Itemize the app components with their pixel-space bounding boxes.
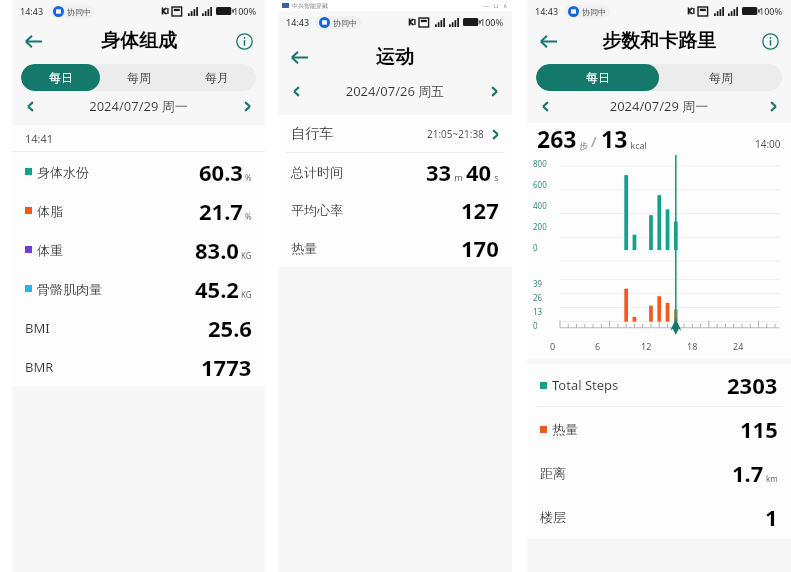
button[interactable]: Next bbox=[232, 91, 262, 121]
staticText: 距离 bbox=[540, 465, 566, 481]
button[interactable]: Next bbox=[479, 76, 509, 106]
staticText: 13 bbox=[533, 306, 543, 317]
staticText: 100% bbox=[480, 16, 504, 28]
staticText: 25.6 bbox=[208, 313, 252, 343]
button[interactable]: Next bbox=[758, 91, 788, 121]
button[interactable]: 热量 bbox=[278, 229, 512, 267]
button[interactable]: Previous bbox=[530, 91, 560, 121]
staticText: % bbox=[245, 172, 252, 183]
button[interactable]: BMR bbox=[12, 347, 265, 386]
staticText: 127 bbox=[461, 195, 499, 225]
button[interactable]: 身体水份 bbox=[12, 152, 265, 191]
staticText: 2024/07/26 周五 bbox=[311, 82, 479, 100]
staticText: — ⊔ ∧ bbox=[483, 2, 508, 10]
staticText: 40 bbox=[466, 157, 492, 187]
button[interactable]: Back bbox=[282, 40, 316, 74]
button[interactable]: BMI bbox=[12, 308, 265, 347]
staticText: 18 bbox=[687, 340, 698, 352]
staticText: 2024/07/29 周一 bbox=[560, 97, 758, 115]
staticText: 12 bbox=[641, 340, 652, 352]
button[interactable]: 楼层 bbox=[527, 495, 791, 539]
staticText: 263 bbox=[537, 123, 577, 151]
staticText: 1 bbox=[765, 502, 778, 532]
button[interactable]: 总计时间 bbox=[278, 153, 512, 191]
button[interactable]: Back bbox=[16, 24, 50, 58]
staticText: 体重 bbox=[37, 242, 63, 258]
button[interactable]: Next bbox=[484, 123, 506, 145]
button[interactable]: Info bbox=[229, 26, 259, 56]
staticText: 体脂 bbox=[37, 203, 63, 219]
staticText: 每周 bbox=[709, 70, 733, 85]
staticText: 每日 bbox=[586, 70, 610, 85]
staticText: 平均心率 bbox=[291, 202, 343, 218]
staticText: 26 bbox=[533, 292, 543, 303]
staticText: 100% bbox=[759, 5, 783, 17]
staticText: km bbox=[766, 473, 778, 484]
staticText: 2024/07/29 周一 bbox=[45, 97, 232, 115]
staticText: 步数和卡路里 bbox=[602, 29, 716, 53]
button[interactable]: 每周 bbox=[659, 64, 782, 91]
button[interactable]: 平均心率 bbox=[278, 191, 512, 229]
staticText: 骨骼肌肉量 bbox=[37, 281, 102, 297]
button[interactable]: 热量 bbox=[527, 407, 791, 451]
button[interactable]: Back bbox=[531, 24, 565, 58]
staticText: 1.7 bbox=[732, 458, 764, 488]
staticText: % bbox=[245, 211, 252, 222]
staticText: 2303 bbox=[727, 370, 778, 400]
staticText: 0 bbox=[533, 242, 538, 253]
staticText: 115 bbox=[740, 414, 778, 444]
staticText: 100% bbox=[233, 5, 257, 17]
button[interactable]: 自行车 bbox=[278, 115, 512, 152]
button[interactable]: Total Steps bbox=[527, 364, 791, 406]
button[interactable]: 体脂 bbox=[12, 191, 265, 230]
staticText: 400 bbox=[533, 200, 547, 211]
button[interactable]: 每日 bbox=[536, 64, 659, 91]
staticText: 83.0 bbox=[195, 235, 239, 265]
staticText: 1773 bbox=[201, 352, 252, 382]
staticText: 13 bbox=[601, 123, 628, 151]
button[interactable]: Previous bbox=[15, 91, 45, 121]
staticText: 协同中 bbox=[333, 18, 357, 28]
staticText: KG bbox=[241, 250, 252, 261]
staticText: 800 bbox=[533, 158, 547, 169]
button[interactable]: 每日 bbox=[21, 64, 100, 91]
staticText: 每月 bbox=[205, 70, 229, 85]
staticText: s bbox=[492, 171, 499, 183]
staticText: 14:43 bbox=[535, 5, 559, 17]
button[interactable]: 骨骼肌肉量 bbox=[12, 269, 265, 308]
staticText: 14:00 bbox=[755, 137, 781, 151]
button[interactable]: 距离 bbox=[527, 451, 791, 495]
staticText: KG bbox=[241, 289, 252, 300]
staticText: 600 bbox=[533, 179, 547, 190]
button[interactable]: Info bbox=[755, 26, 785, 56]
staticText: 14:43 bbox=[286, 16, 310, 28]
staticText: 每日 bbox=[49, 70, 73, 85]
button[interactable]: 每周 bbox=[100, 64, 178, 91]
staticText: 自行车 bbox=[291, 125, 333, 143]
staticText: 200 bbox=[533, 221, 547, 232]
button[interactable]: Previous bbox=[281, 76, 311, 106]
staticText: 170 bbox=[461, 233, 499, 263]
staticText: 步 bbox=[577, 139, 591, 151]
staticText: 0 bbox=[533, 320, 538, 331]
staticText: / bbox=[591, 131, 597, 151]
staticText: 24 bbox=[733, 340, 744, 352]
staticText: 14:41 bbox=[25, 131, 54, 146]
staticText: BMR bbox=[25, 358, 54, 376]
staticText: 运动 bbox=[376, 45, 414, 69]
staticText: 21.7 bbox=[199, 196, 243, 226]
button[interactable]: 体重 bbox=[12, 230, 265, 269]
staticText: 楼层 bbox=[540, 509, 566, 525]
staticText: 热量 bbox=[291, 240, 317, 256]
staticText: 总计时间 bbox=[291, 164, 343, 180]
staticText: 身体水份 bbox=[37, 164, 89, 180]
staticText: 60.3 bbox=[199, 157, 243, 187]
staticText: 21:05~21:38 bbox=[427, 127, 484, 141]
staticText: kcal bbox=[628, 139, 647, 151]
staticText: 45.2 bbox=[195, 274, 239, 304]
staticText: 14:43 bbox=[20, 5, 44, 17]
staticText: 6 bbox=[595, 340, 601, 352]
staticText: BMI bbox=[25, 319, 50, 337]
button[interactable]: 每月 bbox=[178, 64, 256, 91]
staticText: m bbox=[452, 171, 466, 183]
